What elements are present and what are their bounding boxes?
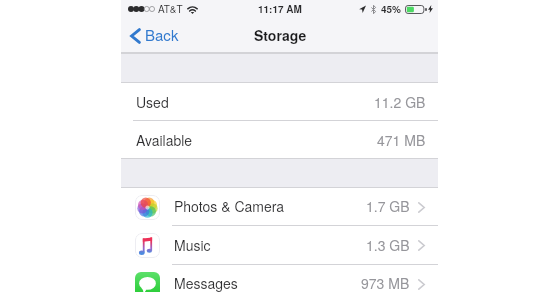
staticText: 11.2 GB bbox=[374, 92, 426, 112]
staticText: Messages bbox=[174, 273, 238, 292]
staticText: 973 MB bbox=[361, 273, 410, 292]
button[interactable]: Photos & Camera bbox=[121, 188, 438, 226]
button[interactable]: Used bbox=[121, 83, 438, 121]
staticText: 471 MB bbox=[377, 130, 426, 150]
staticText: Available bbox=[136, 130, 193, 150]
staticText: Storage bbox=[254, 25, 307, 45]
staticText: 11:17 AM bbox=[258, 2, 302, 16]
staticText: 1.3 GB bbox=[366, 235, 410, 255]
staticText: Used bbox=[136, 92, 169, 112]
button[interactable]: Back bbox=[121, 21, 189, 52]
staticText: Music bbox=[174, 235, 211, 255]
button[interactable]: Available bbox=[121, 121, 438, 158]
staticText: AT&T bbox=[158, 2, 183, 16]
staticText: Back bbox=[145, 24, 179, 45]
staticText: 1.7 GB bbox=[366, 196, 410, 216]
staticText: Photos & Camera bbox=[174, 196, 285, 216]
button[interactable]: Messages bbox=[121, 265, 438, 292]
staticText: 45% bbox=[381, 2, 402, 16]
button[interactable]: Music bbox=[121, 226, 438, 265]
